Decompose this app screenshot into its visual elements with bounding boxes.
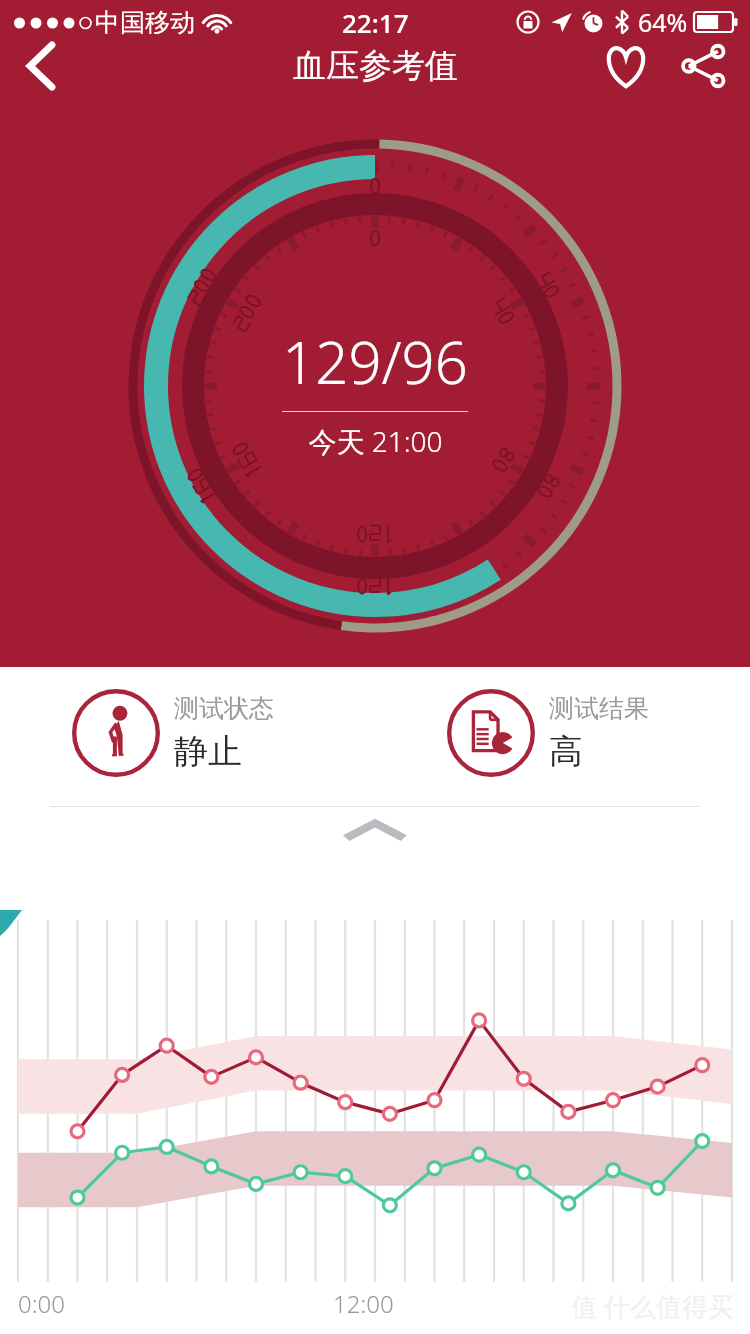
staticText: 值 什么值得买 — [571, 1288, 734, 1324]
staticText: 血压参考值 — [293, 45, 458, 87]
staticText: 中国移动 — [95, 7, 195, 38]
button[interactable]: Favorite — [594, 44, 658, 88]
button[interactable]: Back — [10, 44, 72, 88]
staticText: 测试结果 — [549, 693, 649, 724]
staticText: 高 — [549, 730, 583, 773]
button[interactable]: Expand — [343, 815, 407, 841]
button[interactable]: 测试状态 — [0, 689, 375, 777]
button[interactable]: Share — [672, 44, 736, 88]
staticText: 64% — [638, 5, 688, 39]
staticText: 今天 21:00 — [308, 422, 443, 460]
button[interactable]: 测试结果 — [375, 689, 750, 777]
staticText: 12:00 — [333, 1287, 394, 1320]
staticText: 0:00 — [18, 1287, 65, 1320]
staticText: 测试状态 — [174, 693, 274, 724]
staticText: 129/96 — [282, 322, 468, 401]
staticText: 静止 — [174, 730, 242, 773]
staticText: 22:17 — [342, 5, 409, 40]
